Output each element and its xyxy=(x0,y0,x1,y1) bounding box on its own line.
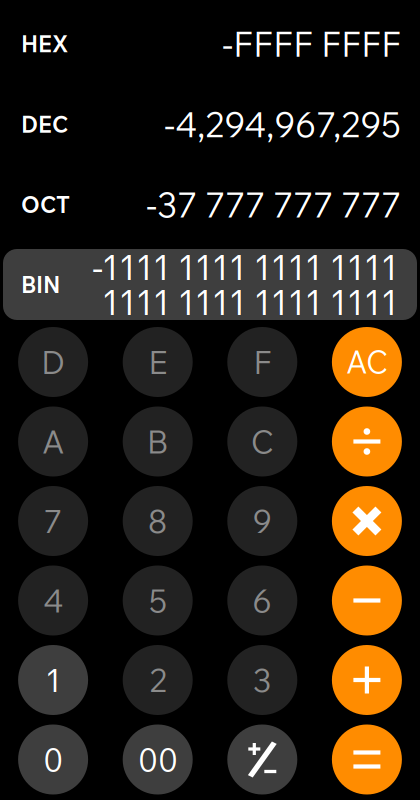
button[interactable]: 00 xyxy=(123,724,193,794)
staticText: 6 xyxy=(252,580,272,621)
staticText: 4 xyxy=(43,580,63,621)
staticText: F xyxy=(253,342,271,382)
button[interactable]: C xyxy=(227,406,297,476)
button[interactable]: 9 xyxy=(227,486,297,556)
button[interactable]: 4 xyxy=(18,565,88,635)
staticText: AC xyxy=(346,343,388,381)
staticText: 9 xyxy=(252,501,272,541)
staticText: 8 xyxy=(148,501,168,541)
button[interactable]: Multiply xyxy=(332,486,402,556)
staticText: 1111 1111 1111 1111 xyxy=(102,280,398,324)
button[interactable]: 1 xyxy=(18,645,88,715)
staticText: 3 xyxy=(253,660,272,700)
button[interactable]: 5 xyxy=(123,565,193,635)
staticText: 00 xyxy=(138,739,178,780)
staticText: HEX xyxy=(21,29,68,58)
button[interactable]: 3 xyxy=(227,645,297,715)
button[interactable]: 6 xyxy=(227,565,297,635)
button[interactable]: Subtract xyxy=(332,565,402,635)
staticText: BIN xyxy=(21,270,60,299)
staticText: B xyxy=(147,421,169,462)
button[interactable]: 0 xyxy=(18,724,88,794)
button[interactable]: E xyxy=(123,327,193,397)
staticText: 2 xyxy=(149,660,166,700)
button[interactable]: Add xyxy=(332,645,402,715)
staticText: OCT xyxy=(21,190,70,219)
staticText: D xyxy=(41,342,65,382)
staticText: A xyxy=(42,421,64,462)
staticText: 5 xyxy=(149,580,167,621)
button[interactable]: 2 xyxy=(123,645,193,715)
staticText: DEC xyxy=(21,110,68,138)
staticText: -37 777 777 777 xyxy=(146,183,401,226)
staticText: C xyxy=(251,421,274,462)
staticText: 0 xyxy=(43,739,63,780)
button[interactable]: 7 xyxy=(18,486,88,556)
staticText: -FFFF FFFF xyxy=(222,22,401,66)
button[interactable]: A xyxy=(18,406,88,476)
button[interactable]: Equals xyxy=(332,724,402,794)
button[interactable]: B xyxy=(123,406,193,476)
staticText: 7 xyxy=(44,501,63,541)
staticText: 1 xyxy=(46,660,61,700)
button[interactable]: Divide xyxy=(332,406,402,476)
staticText: -4,294,967,295 xyxy=(164,102,401,146)
button[interactable]: AC xyxy=(332,327,402,397)
staticText: -1111 1111 1111 1111 xyxy=(92,245,398,289)
button[interactable]: D xyxy=(18,327,88,397)
button[interactable]: F xyxy=(227,327,297,397)
staticText: E xyxy=(148,342,167,382)
button[interactable]: Plus or minus xyxy=(227,724,297,794)
button[interactable]: 8 xyxy=(123,486,193,556)
